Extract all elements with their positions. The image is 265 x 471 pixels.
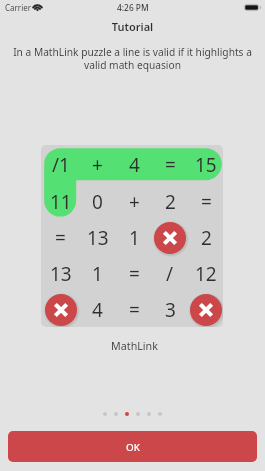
other: Blocked <box>43 292 79 327</box>
staticText: = <box>129 261 140 287</box>
staticText: 11 <box>50 189 72 215</box>
staticText: 0 <box>92 189 103 215</box>
staticText: = <box>55 225 66 251</box>
staticText: /1 <box>52 152 70 178</box>
staticText: 3 <box>165 297 176 323</box>
staticText: = <box>165 152 176 178</box>
staticText: Carrier <box>5 2 32 13</box>
other: Blocked <box>152 220 188 256</box>
staticText: 2 <box>201 225 212 251</box>
staticText: + <box>129 189 140 215</box>
staticText: 4:26 PM <box>117 2 149 13</box>
staticText: 1 <box>92 261 103 287</box>
staticText: OK <box>126 441 140 454</box>
staticText: 4 <box>129 152 140 178</box>
button[interactable]: Page 1 <box>103 412 107 416</box>
staticText: Tutorial <box>0 19 265 34</box>
staticText: In a MathLink puzzle a line is valid if … <box>11 45 254 72</box>
staticText: 2 <box>165 189 176 215</box>
staticText: / <box>166 261 174 287</box>
staticText: = <box>129 297 140 323</box>
button[interactable]: Page 4 <box>136 412 140 416</box>
button[interactable]: Page 5 <box>147 412 151 416</box>
button[interactable]: OK <box>8 431 257 462</box>
staticText: 12 <box>195 261 217 287</box>
staticText: = <box>201 189 212 215</box>
staticText: 15 <box>195 152 217 178</box>
staticText: 13 <box>50 261 72 287</box>
staticText: 13 <box>87 225 109 251</box>
other: Blocked <box>188 292 223 327</box>
button[interactable]: Page 2 <box>114 412 118 416</box>
staticText: 4 <box>92 297 103 323</box>
staticText: 1 <box>129 225 140 251</box>
button[interactable]: Page 3 <box>125 412 129 416</box>
button[interactable]: Page 6 <box>158 412 162 416</box>
staticText: MathLink <box>2 339 265 354</box>
staticText: + <box>92 152 103 178</box>
